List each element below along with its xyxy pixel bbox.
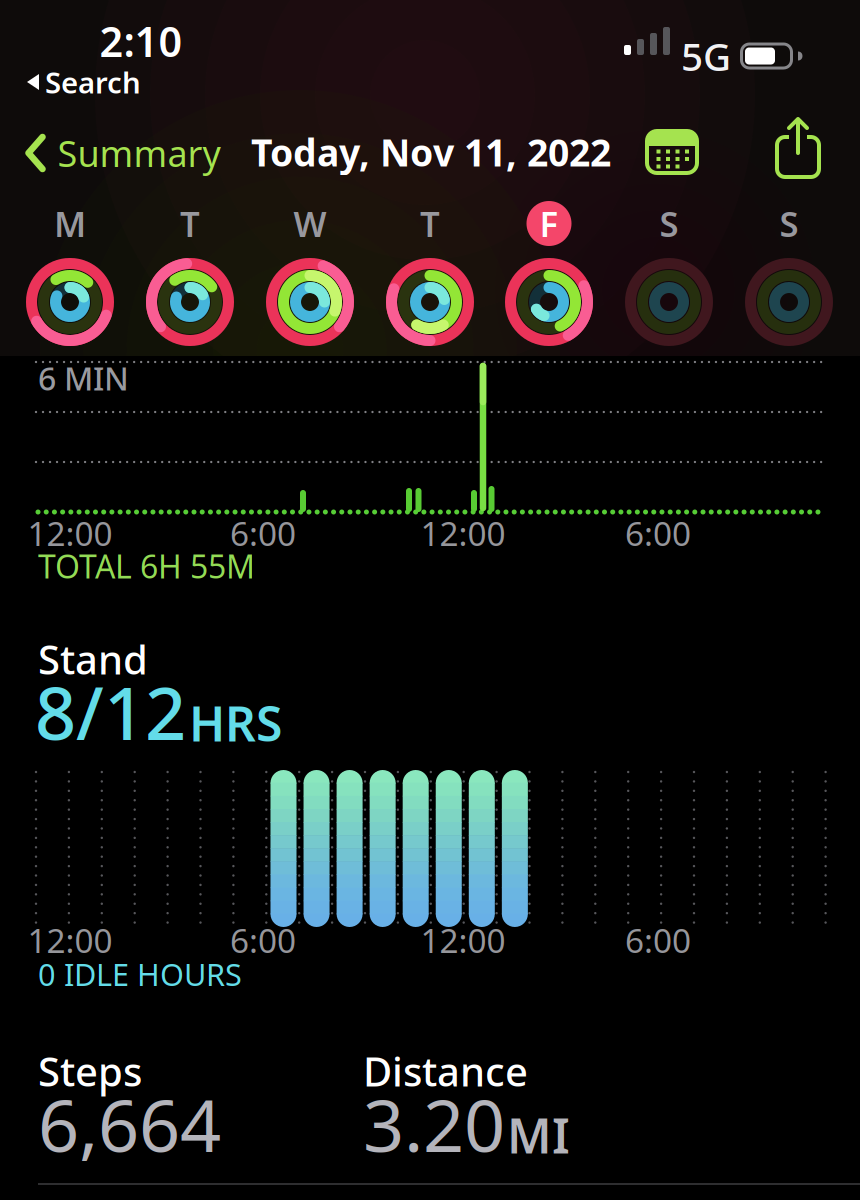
button[interactable]: Calendar [644, 127, 700, 177]
button[interactable]: Activity S [624, 201, 714, 347]
staticText: 5G [681, 30, 731, 82]
staticText: Search [45, 62, 141, 101]
staticText: Steps [38, 1044, 142, 1097]
staticText: 12:00 [27, 511, 112, 555]
button[interactable]: Activity T [385, 201, 475, 347]
staticText: 6:00 [230, 511, 296, 555]
button[interactable]: Back to Search [27, 62, 141, 101]
staticText: 12:00 [420, 511, 505, 555]
staticText: 6 MIN [38, 357, 129, 399]
staticText: 3.20 [363, 1076, 505, 1172]
staticText: TOTAL 6H 55M [38, 545, 255, 587]
staticText: HRS [189, 691, 282, 755]
staticText: 12:00 [27, 918, 112, 962]
staticText: T [180, 200, 200, 246]
staticText: S [779, 200, 798, 246]
staticText: T [420, 200, 440, 246]
staticText: S [659, 200, 678, 246]
staticText: M [54, 200, 86, 246]
staticText: MI [507, 1103, 570, 1167]
staticText: F [539, 200, 558, 246]
button[interactable]: Activity T [145, 201, 235, 347]
staticText: W [293, 200, 326, 246]
staticText: Today, Nov 11, 2022 [251, 127, 611, 177]
staticText: Summary [57, 129, 220, 177]
staticText: 6:00 [230, 918, 296, 962]
staticText: 0 IDLE HOURS [38, 954, 242, 994]
button[interactable]: Activity W [265, 201, 355, 347]
staticText: Stand [38, 632, 148, 685]
staticText: 8/12 [35, 664, 186, 760]
staticText: 6,664 [38, 1076, 221, 1172]
staticText: 6:00 [625, 511, 691, 555]
button[interactable]: Share [773, 117, 823, 179]
button[interactable]: Activity M [25, 201, 115, 347]
staticText: 2:10 [99, 14, 182, 68]
staticText: 6:00 [625, 918, 691, 962]
button[interactable]: Activity S [744, 201, 834, 347]
button[interactable]: Back to Summary [25, 129, 220, 177]
staticText: Distance [363, 1044, 528, 1097]
staticText: 12:00 [420, 918, 505, 962]
button[interactable]: Activity F [504, 201, 594, 347]
